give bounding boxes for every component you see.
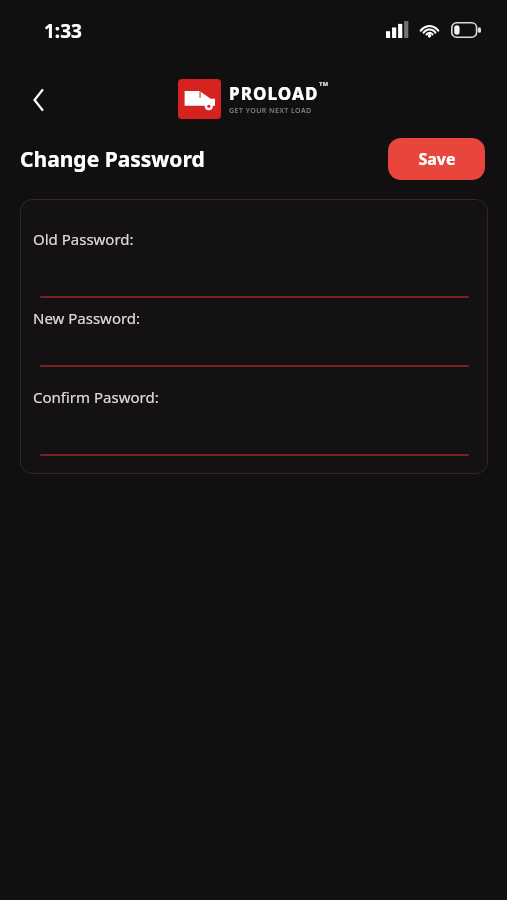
staticText: Save (418, 148, 456, 170)
staticText: PROLOAD (229, 82, 319, 105)
button[interactable]: PROLOAD (178, 79, 329, 119)
staticText: GET YOUR NEXT LOAD (229, 106, 312, 116)
staticText: Confirm Pasword: (33, 387, 159, 407)
staticText: Old Password: (33, 229, 134, 249)
button[interactable]: Save (388, 138, 485, 180)
staticText: Change Password (20, 145, 205, 174)
staticText: 1:33 (44, 18, 82, 44)
staticText: New Password: (33, 308, 141, 328)
staticText: TM (319, 80, 329, 88)
button[interactable]: Back (18, 80, 58, 120)
